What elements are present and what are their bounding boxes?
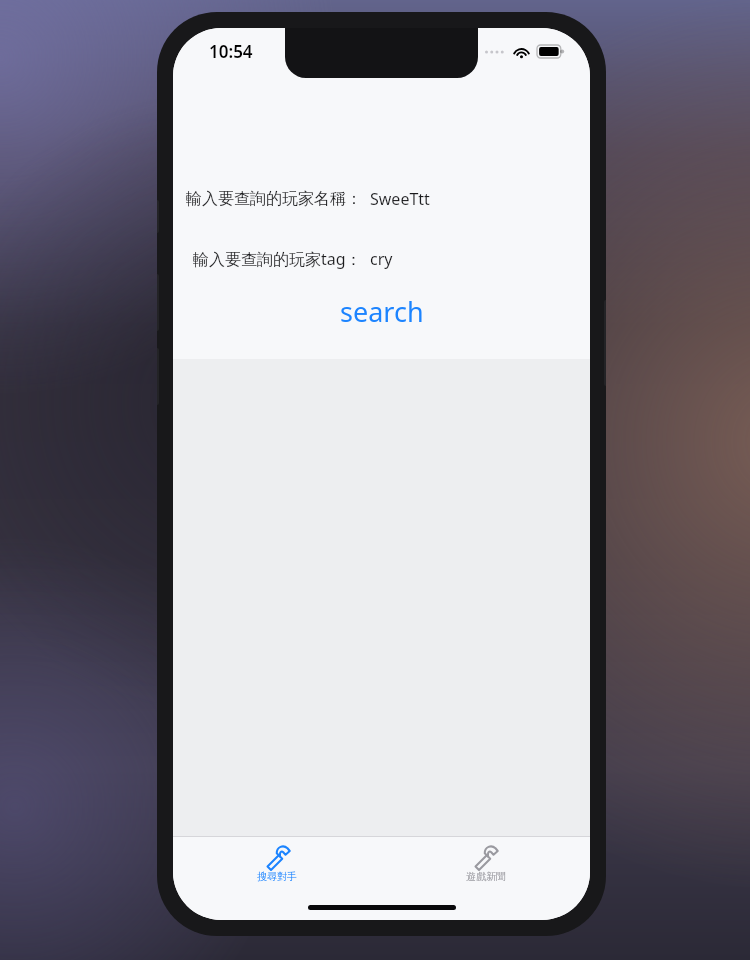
staticText: 遊戲新聞: [466, 870, 506, 883]
staticText: 10:54: [209, 40, 253, 63]
button[interactable]: 搜尋對手: [173, 842, 381, 885]
staticText: cry: [370, 248, 393, 270]
staticText: 輸入要查詢的玩家tag：: [193, 248, 362, 270]
staticText: search: [340, 293, 424, 330]
staticText: 搜尋對手: [257, 870, 297, 883]
staticText: 輸入要查詢的玩家名稱：: [186, 189, 362, 209]
button[interactable]: 遊戲新聞: [381, 842, 590, 885]
button[interactable]: search: [322, 286, 442, 337]
staticText: SweeTtt: [370, 188, 430, 210]
